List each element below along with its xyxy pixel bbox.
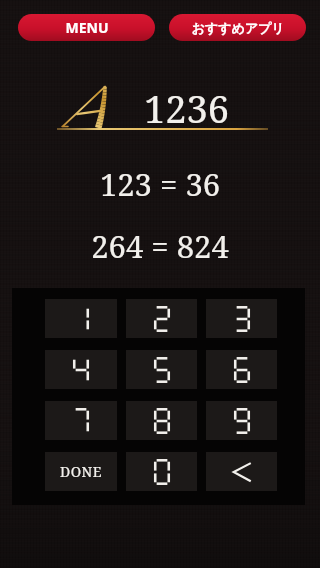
button[interactable]	[126, 350, 197, 389]
button[interactable]: おすすめアプリ	[169, 14, 306, 41]
button[interactable]	[206, 401, 277, 440]
button[interactable]	[45, 350, 117, 389]
button[interactable]	[45, 299, 117, 338]
button[interactable]: MENU	[18, 14, 155, 41]
button[interactable]	[206, 299, 277, 338]
button[interactable]: Backspace	[206, 452, 277, 491]
staticText: おすすめアプリ	[191, 20, 285, 36]
button[interactable]	[206, 350, 277, 389]
button[interactable]	[126, 299, 197, 338]
staticText: 1236	[144, 82, 229, 128]
staticText: DONE	[60, 462, 102, 481]
button[interactable]	[126, 401, 197, 440]
staticText: 264 = 824	[0, 225, 320, 267]
button[interactable]: Done	[45, 452, 117, 491]
staticText: 123 = 36	[0, 163, 320, 205]
button[interactable]	[45, 401, 117, 440]
staticText: MENU	[65, 18, 109, 37]
button[interactable]	[126, 452, 197, 491]
